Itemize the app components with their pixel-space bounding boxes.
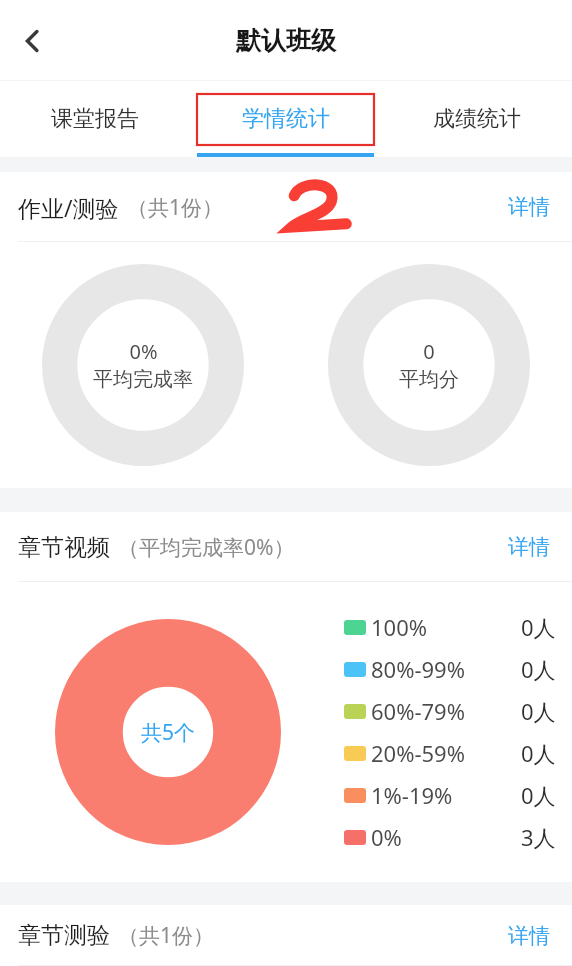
staticText: 章节测验 [18, 921, 110, 950]
staticText: （平均完成率0%） [118, 533, 295, 562]
staticText: 0人 [521, 738, 556, 768]
staticText: 平均分 [399, 367, 459, 392]
staticText: 0 [423, 338, 435, 365]
button[interactable]: 详情 [494, 913, 564, 959]
staticText: 默认班级 [236, 25, 336, 56]
staticText: 0人 [521, 696, 556, 726]
staticText: 3人 [521, 822, 556, 852]
staticText: 作业/测验 [18, 192, 119, 223]
staticText: 100% [371, 612, 428, 642]
staticText: 80%-99% [371, 654, 465, 684]
staticText: 0% [371, 822, 402, 852]
staticText: （共1份） [118, 921, 215, 950]
button[interactable]: 学情统计 [190, 81, 381, 157]
staticText: 0人 [521, 780, 556, 810]
staticText: 章节视频 [18, 533, 110, 562]
staticText: 详情 [508, 534, 550, 560]
staticText: 1%-19% [371, 780, 453, 810]
staticText: 60%-79% [371, 696, 465, 726]
staticText: 0人 [521, 654, 556, 684]
button[interactable]: 详情 [494, 184, 564, 230]
button[interactable]: 详情 [494, 524, 564, 570]
staticText: 详情 [508, 194, 550, 220]
staticText: 学情统计 [242, 105, 330, 133]
staticText: 详情 [508, 923, 550, 949]
staticText: 20%-59% [371, 738, 465, 768]
staticText: 0% [129, 338, 158, 365]
button[interactable]: Back [4, 12, 62, 70]
staticText: （共1份） [127, 193, 224, 222]
button[interactable]: 成绩统计 [381, 81, 572, 157]
staticText: 共5个 [141, 718, 196, 747]
staticText: 课堂报告 [51, 105, 139, 133]
button[interactable]: 课堂报告 [0, 81, 190, 157]
staticText: 平均完成率 [93, 367, 193, 392]
staticText: 成绩统计 [433, 105, 521, 133]
staticText: 0人 [521, 612, 556, 642]
